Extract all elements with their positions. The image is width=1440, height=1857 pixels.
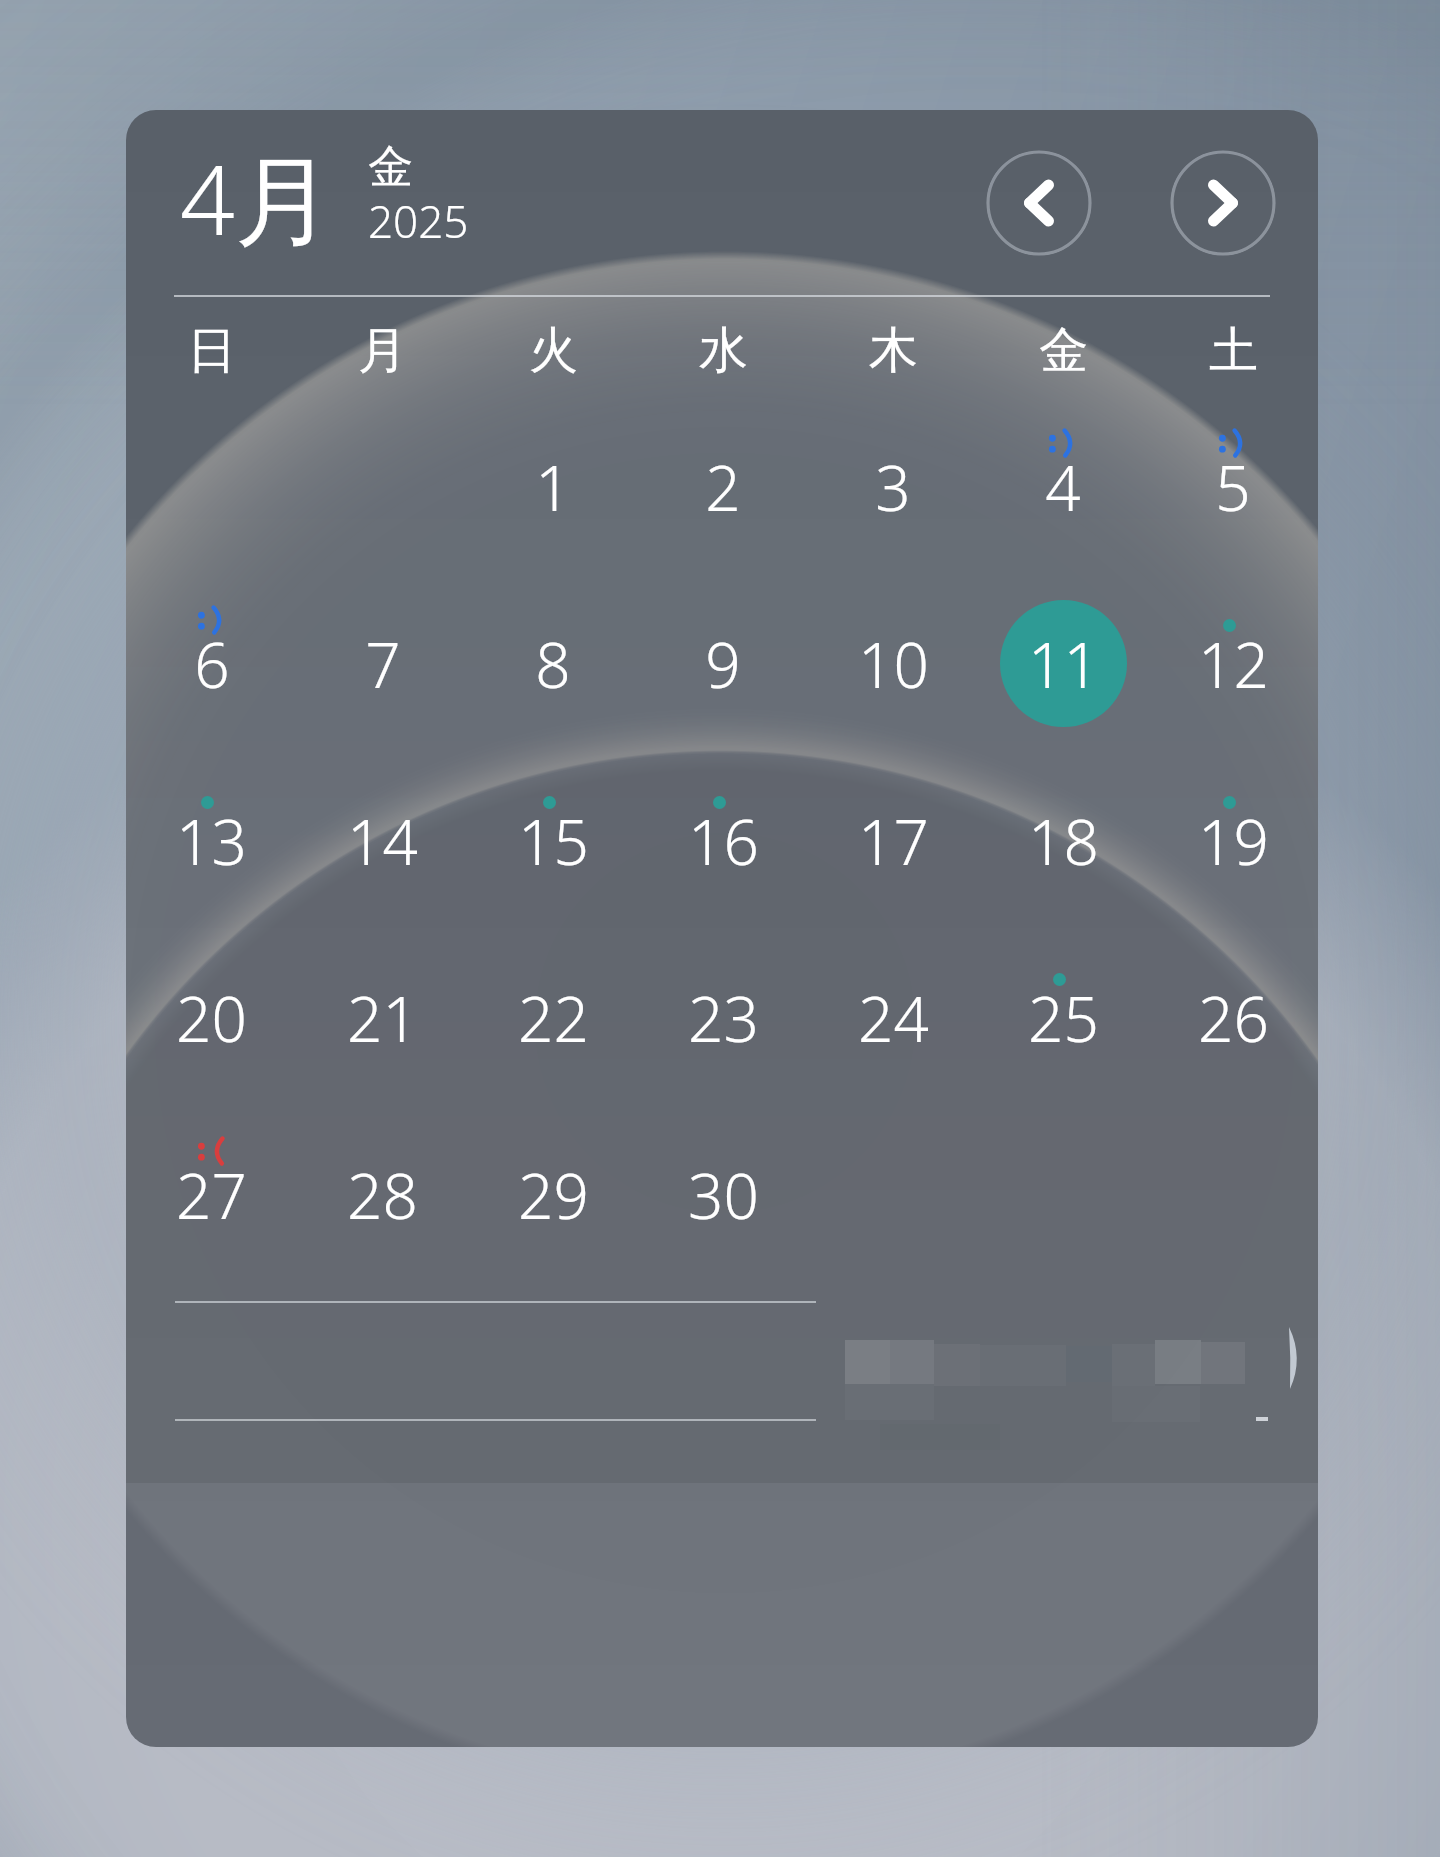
staticText: 金: [368, 139, 413, 196]
staticText: 10: [858, 622, 929, 706]
button[interactable]: Next month: [1170, 150, 1276, 256]
button[interactable]: 18: [978, 752, 1148, 929]
button[interactable]: 17: [808, 752, 978, 929]
staticText: 5: [1215, 445, 1251, 529]
staticText: 14: [347, 799, 418, 883]
button[interactable]: Previous month: [986, 150, 1092, 256]
staticText: 20: [176, 976, 247, 1060]
button[interactable]: 7: [297, 575, 468, 752]
button[interactable]: 27: [126, 1106, 297, 1283]
staticText: 21: [347, 976, 418, 1060]
staticText: 土: [1209, 320, 1258, 382]
staticText: 25: [1028, 976, 1099, 1060]
button[interactable]: 12: [1148, 575, 1318, 752]
button[interactable]: 22: [468, 929, 638, 1106]
button[interactable]: 23: [638, 929, 808, 1106]
staticText: 6: [194, 622, 230, 706]
staticText: 18: [1028, 799, 1099, 883]
staticText: 22: [518, 976, 589, 1060]
staticText: 28: [347, 1153, 418, 1237]
staticText: 8: [535, 622, 571, 706]
staticText: 29: [518, 1153, 589, 1237]
staticText: 水: [699, 320, 748, 382]
staticText: 30: [688, 1153, 759, 1237]
button[interactable]: 9: [638, 575, 808, 752]
staticText: 2: [705, 445, 741, 529]
staticText: 木: [869, 320, 918, 382]
button[interactable]: 3: [808, 398, 978, 575]
staticText: 13: [176, 799, 247, 883]
staticText: 4: [1045, 445, 1081, 529]
staticText: 23: [688, 976, 759, 1060]
button[interactable]: 14: [297, 752, 468, 929]
button[interactable]: 28: [297, 1106, 468, 1283]
button[interactable]: 1: [468, 398, 638, 575]
staticText: 16: [688, 799, 759, 883]
button[interactable]: 8: [468, 575, 638, 752]
staticText: 11: [1028, 622, 1099, 706]
button[interactable]: 4: [978, 398, 1148, 575]
staticText: 24: [858, 976, 929, 1060]
staticText: 2025: [368, 191, 469, 251]
button[interactable]: 30: [638, 1106, 808, 1283]
button[interactable]: 16: [638, 752, 808, 929]
staticText: 15: [518, 799, 589, 883]
staticText: 27: [176, 1153, 247, 1237]
button[interactable]: 25: [978, 929, 1148, 1106]
staticText: 金: [1039, 320, 1088, 382]
button[interactable]: 2: [638, 398, 808, 575]
staticText: 月: [358, 320, 407, 382]
staticText: 月: [235, 141, 333, 264]
staticText: 火: [529, 320, 578, 382]
button[interactable]: 5: [1148, 398, 1318, 575]
staticText: 1: [535, 445, 571, 529]
button[interactable]: 6: [126, 575, 297, 752]
button[interactable]: 15: [468, 752, 638, 929]
button[interactable]: 19: [1148, 752, 1318, 929]
button[interactable]: 11: [978, 575, 1148, 752]
button[interactable]: 21: [297, 929, 468, 1106]
staticText: 17: [858, 799, 929, 883]
staticText: 19: [1198, 799, 1269, 883]
staticText: 9: [705, 622, 741, 706]
staticText: 4: [180, 132, 235, 263]
staticText: 7: [365, 622, 401, 706]
staticText: 12: [1198, 622, 1269, 706]
button[interactable]: 24: [808, 929, 978, 1106]
button[interactable]: 29: [468, 1106, 638, 1283]
staticText: 日: [187, 320, 236, 382]
button[interactable]: 20: [126, 929, 297, 1106]
button[interactable]: 26: [1148, 929, 1318, 1106]
button[interactable]: 10: [808, 575, 978, 752]
button[interactable]: 13: [126, 752, 297, 929]
staticText: 26: [1198, 976, 1269, 1060]
staticText: 3: [875, 445, 911, 529]
